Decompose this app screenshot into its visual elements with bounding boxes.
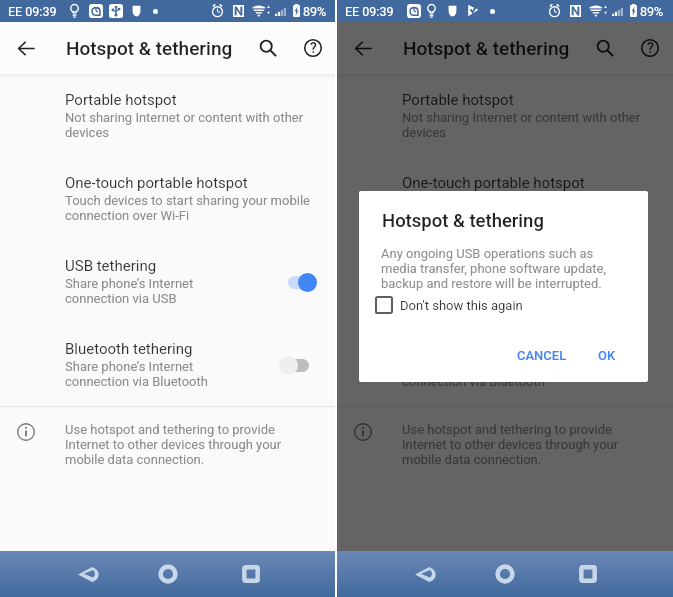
- button[interactable]: Help: [634, 32, 666, 64]
- staticText: Use hotspot and tethering to provide Int…: [402, 422, 632, 467]
- staticText: Not sharing Internet or content with oth…: [402, 110, 648, 140]
- staticText: Portable hotspot: [65, 91, 177, 109]
- button[interactable]: [279, 273, 317, 292]
- staticText: EE 09:39: [8, 4, 57, 19]
- button[interactable]: Don't show this again: [376, 297, 523, 313]
- staticText: Don't show this again: [400, 298, 523, 313]
- staticText: ?: [647, 40, 654, 56]
- staticText: Touch devices to start sharing your mobi…: [65, 193, 315, 223]
- staticText: CANCEL: [517, 348, 567, 363]
- staticText: Hotspot & tethering: [382, 210, 544, 232]
- staticText: Portable hotspot: [402, 91, 514, 109]
- button[interactable]: Bluetooth tethering: [337, 337, 673, 420]
- button[interactable]: Recents: [546, 551, 630, 597]
- staticText: OK: [598, 348, 616, 363]
- button[interactable]: Back: [347, 32, 379, 64]
- staticText: Share phone’s Internet connection via Bl…: [402, 359, 574, 389]
- button[interactable]: USB tethering: [0, 254, 335, 337]
- staticText: One-touch portable hotspot: [402, 174, 585, 192]
- staticText: Share phone’s Internet connection via US…: [65, 276, 237, 306]
- button[interactable]: Help: [297, 32, 329, 64]
- staticText: EE 09:39: [345, 4, 394, 19]
- staticText: Share phone’s Internet connection via Bl…: [65, 359, 237, 389]
- button[interactable]: Home: [463, 551, 547, 597]
- button[interactable]: [279, 356, 317, 375]
- staticText: USB tethering: [402, 257, 494, 275]
- button[interactable]: Portable hotspot: [0, 88, 335, 171]
- staticText: Bluetooth tethering: [65, 340, 193, 358]
- staticText: Bluetooth tethering: [402, 340, 530, 358]
- button[interactable]: Back: [10, 32, 42, 64]
- staticText: Hotspot & tethering: [403, 37, 570, 59]
- button[interactable]: Back: [383, 551, 467, 597]
- staticText: Not sharing Internet or content with oth…: [65, 110, 311, 140]
- staticText: EE 09:39: [345, 4, 394, 19]
- button[interactable]: USB tethering: [337, 254, 673, 337]
- button[interactable]: Recents: [209, 551, 293, 597]
- button[interactable]: Back: [383, 551, 467, 597]
- button[interactable]: CANCEL: [509, 340, 575, 371]
- staticText: Hotspot & tethering: [66, 37, 233, 59]
- staticText: Touch devices to start sharing your mobi…: [402, 193, 652, 223]
- staticText: One-touch portable hotspot: [65, 174, 248, 192]
- staticText: 89%: [303, 4, 327, 19]
- button[interactable]: Search: [589, 32, 621, 64]
- staticText: Use hotspot and tethering to provide Int…: [65, 422, 295, 467]
- staticText: Any ongoing USB operations such as media…: [381, 246, 616, 291]
- button[interactable]: Portable hotspot: [337, 88, 673, 171]
- staticText: ?: [310, 40, 317, 56]
- staticText: 89%: [640, 4, 664, 19]
- button[interactable]: One-touch portable hotspot: [337, 171, 673, 254]
- staticText: Share phone’s Internet connection via US…: [402, 276, 574, 306]
- button[interactable]: Bluetooth tethering: [0, 337, 335, 420]
- button[interactable]: Recents: [546, 551, 630, 597]
- button[interactable]: Home: [126, 551, 210, 597]
- button[interactable]: Back: [46, 551, 130, 597]
- button[interactable]: OK: [590, 340, 624, 371]
- button[interactable]: Search: [252, 32, 284, 64]
- button[interactable]: One-touch portable hotspot: [0, 171, 335, 254]
- staticText: USB tethering: [65, 257, 157, 275]
- button[interactable]: Home: [463, 551, 547, 597]
- staticText: 89%: [640, 4, 664, 19]
